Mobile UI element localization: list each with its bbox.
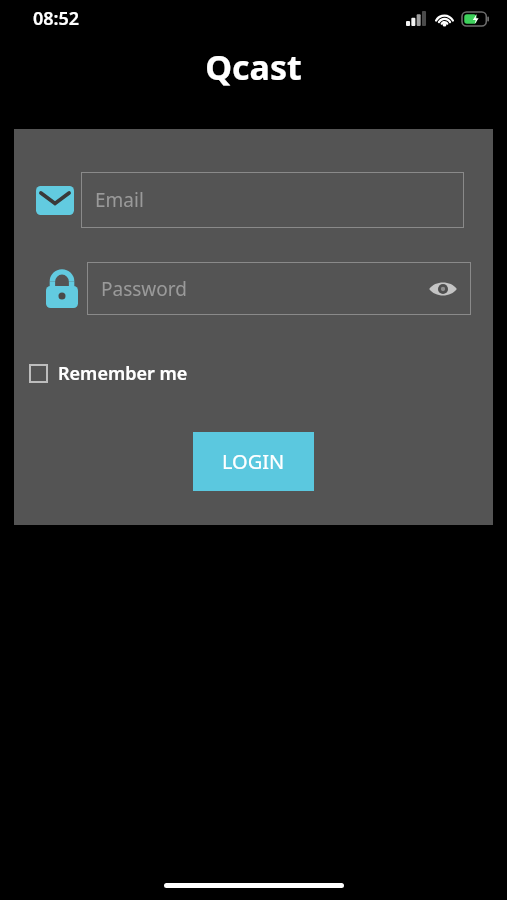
button[interactable]: LOGIN: [193, 432, 314, 491]
button[interactable]: Email: [81, 172, 464, 228]
staticText: LOGIN: [222, 448, 285, 475]
button[interactable]: Password: [87, 262, 471, 315]
staticText: 08:52: [33, 6, 80, 31]
button[interactable]: Show password: [425, 271, 461, 307]
button[interactable]: Remember me: [29, 357, 188, 389]
staticText: Qcast: [0, 44, 507, 90]
staticText: Email: [95, 187, 144, 213]
staticText: Password: [101, 276, 187, 302]
staticText: Remember me: [58, 361, 188, 386]
